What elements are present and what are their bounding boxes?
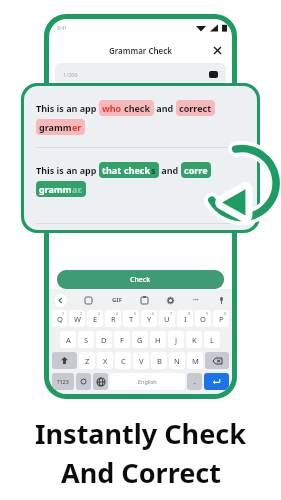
staticText: I xyxy=(184,314,187,324)
button[interactable]: Language xyxy=(93,373,108,390)
staticText: check xyxy=(124,164,151,176)
staticText: 9:41 xyxy=(57,25,67,32)
staticText: Grammar Check xyxy=(109,45,172,56)
button[interactable]: , xyxy=(187,373,202,390)
staticText: F xyxy=(120,335,124,345)
staticText: D xyxy=(101,335,107,345)
button[interactable]: Z xyxy=(79,352,95,369)
staticText: 3 xyxy=(98,311,101,316)
staticText: This is an app xyxy=(36,102,99,114)
button[interactable]: Enter xyxy=(204,373,229,390)
staticText: Y xyxy=(147,314,152,324)
staticText: X xyxy=(103,356,108,366)
button[interactable]: A xyxy=(60,331,76,348)
staticText: 1 xyxy=(62,311,65,316)
button[interactable]: R xyxy=(105,310,121,327)
staticText: W xyxy=(74,314,81,324)
button[interactable]: E xyxy=(87,310,103,327)
button[interactable]: P xyxy=(213,310,229,327)
staticText: 0 xyxy=(224,311,227,316)
button[interactable]: G xyxy=(132,331,148,348)
staticText: Instantly Check xyxy=(35,415,246,452)
button[interactable]: Close xyxy=(211,44,223,56)
button[interactable]: Q xyxy=(52,310,67,327)
staticText: Z xyxy=(85,356,90,366)
button[interactable]: W xyxy=(69,310,85,327)
staticText: T xyxy=(129,314,134,324)
button[interactable]: ?123 xyxy=(52,373,74,390)
staticText: who xyxy=(102,102,124,114)
staticText: 5 xyxy=(134,311,137,316)
staticText: gramm xyxy=(39,183,72,195)
staticText: check xyxy=(124,102,151,114)
staticText: N xyxy=(174,356,180,366)
button[interactable]: S xyxy=(78,331,94,348)
staticText: 6 xyxy=(152,311,155,316)
button[interactable]: clipboard xyxy=(139,295,150,306)
staticText: This is an app xyxy=(36,164,99,176)
button[interactable]: O xyxy=(195,310,211,327)
staticText: A xyxy=(66,335,71,345)
staticText: and xyxy=(159,164,181,176)
button[interactable]: J xyxy=(168,331,184,348)
staticText: gramm xyxy=(39,121,72,133)
button[interactable]: X xyxy=(97,352,113,369)
staticText: 4 xyxy=(116,311,119,316)
staticText: L xyxy=(210,335,214,345)
button[interactable]: K xyxy=(186,331,202,348)
staticText: K xyxy=(192,335,197,345)
staticText: GIF xyxy=(112,296,122,304)
button[interactable]: B xyxy=(151,352,167,369)
button[interactable]: settings xyxy=(165,295,176,306)
button[interactable]: T xyxy=(123,310,139,327)
button[interactable]: C xyxy=(115,352,131,369)
button[interactable]: V xyxy=(133,352,149,369)
staticText: 7 xyxy=(170,311,173,316)
button[interactable]: F xyxy=(114,331,130,348)
staticText: 9 xyxy=(206,311,209,316)
staticText: Q xyxy=(57,314,63,324)
button[interactable]: M xyxy=(187,352,203,369)
staticText: English xyxy=(138,378,157,385)
staticText: ••• xyxy=(193,297,199,304)
button[interactable]: D xyxy=(96,331,112,348)
button[interactable]: More xyxy=(191,295,201,306)
staticText: U xyxy=(164,314,170,324)
button[interactable]: Back xyxy=(54,294,67,307)
button[interactable]: H xyxy=(150,331,166,348)
staticText: 1/200 xyxy=(63,71,78,78)
staticText: H xyxy=(155,335,161,345)
button[interactable]: U xyxy=(159,310,175,327)
staticText: 2 xyxy=(80,311,83,316)
button[interactable]: Y xyxy=(141,310,157,327)
staticText: P xyxy=(219,314,224,324)
button[interactable]: GIF xyxy=(110,294,124,306)
button[interactable]: Clear text xyxy=(208,69,218,79)
button[interactable]: Emoji xyxy=(76,373,91,390)
staticText: correct xyxy=(179,102,212,114)
button[interactable]: N xyxy=(169,352,185,369)
staticText: E xyxy=(93,314,98,324)
staticText: J xyxy=(175,335,178,345)
button[interactable]: Redo correction xyxy=(199,139,281,227)
button[interactable]: sticker xyxy=(83,295,94,306)
staticText: S xyxy=(84,335,89,345)
staticText: and xyxy=(154,102,176,114)
button[interactable]: Check xyxy=(57,270,224,289)
button[interactable]: mic xyxy=(216,295,227,306)
staticText: s xyxy=(151,164,156,176)
staticText: R xyxy=(111,314,116,324)
button[interactable]: Shift xyxy=(52,352,77,369)
staticText: ar. xyxy=(72,183,83,195)
button[interactable]: Backspace xyxy=(205,352,229,369)
staticText: V xyxy=(139,356,144,366)
staticText: O xyxy=(200,314,206,324)
button[interactable]: L xyxy=(204,331,220,348)
button[interactable]: English xyxy=(110,373,185,390)
staticText: And Correct xyxy=(61,454,221,491)
staticText: er xyxy=(72,121,82,133)
button[interactable]: I xyxy=(177,310,193,327)
staticText: that xyxy=(102,164,124,176)
staticText: ?123 xyxy=(57,378,69,385)
staticText: B xyxy=(157,356,162,366)
